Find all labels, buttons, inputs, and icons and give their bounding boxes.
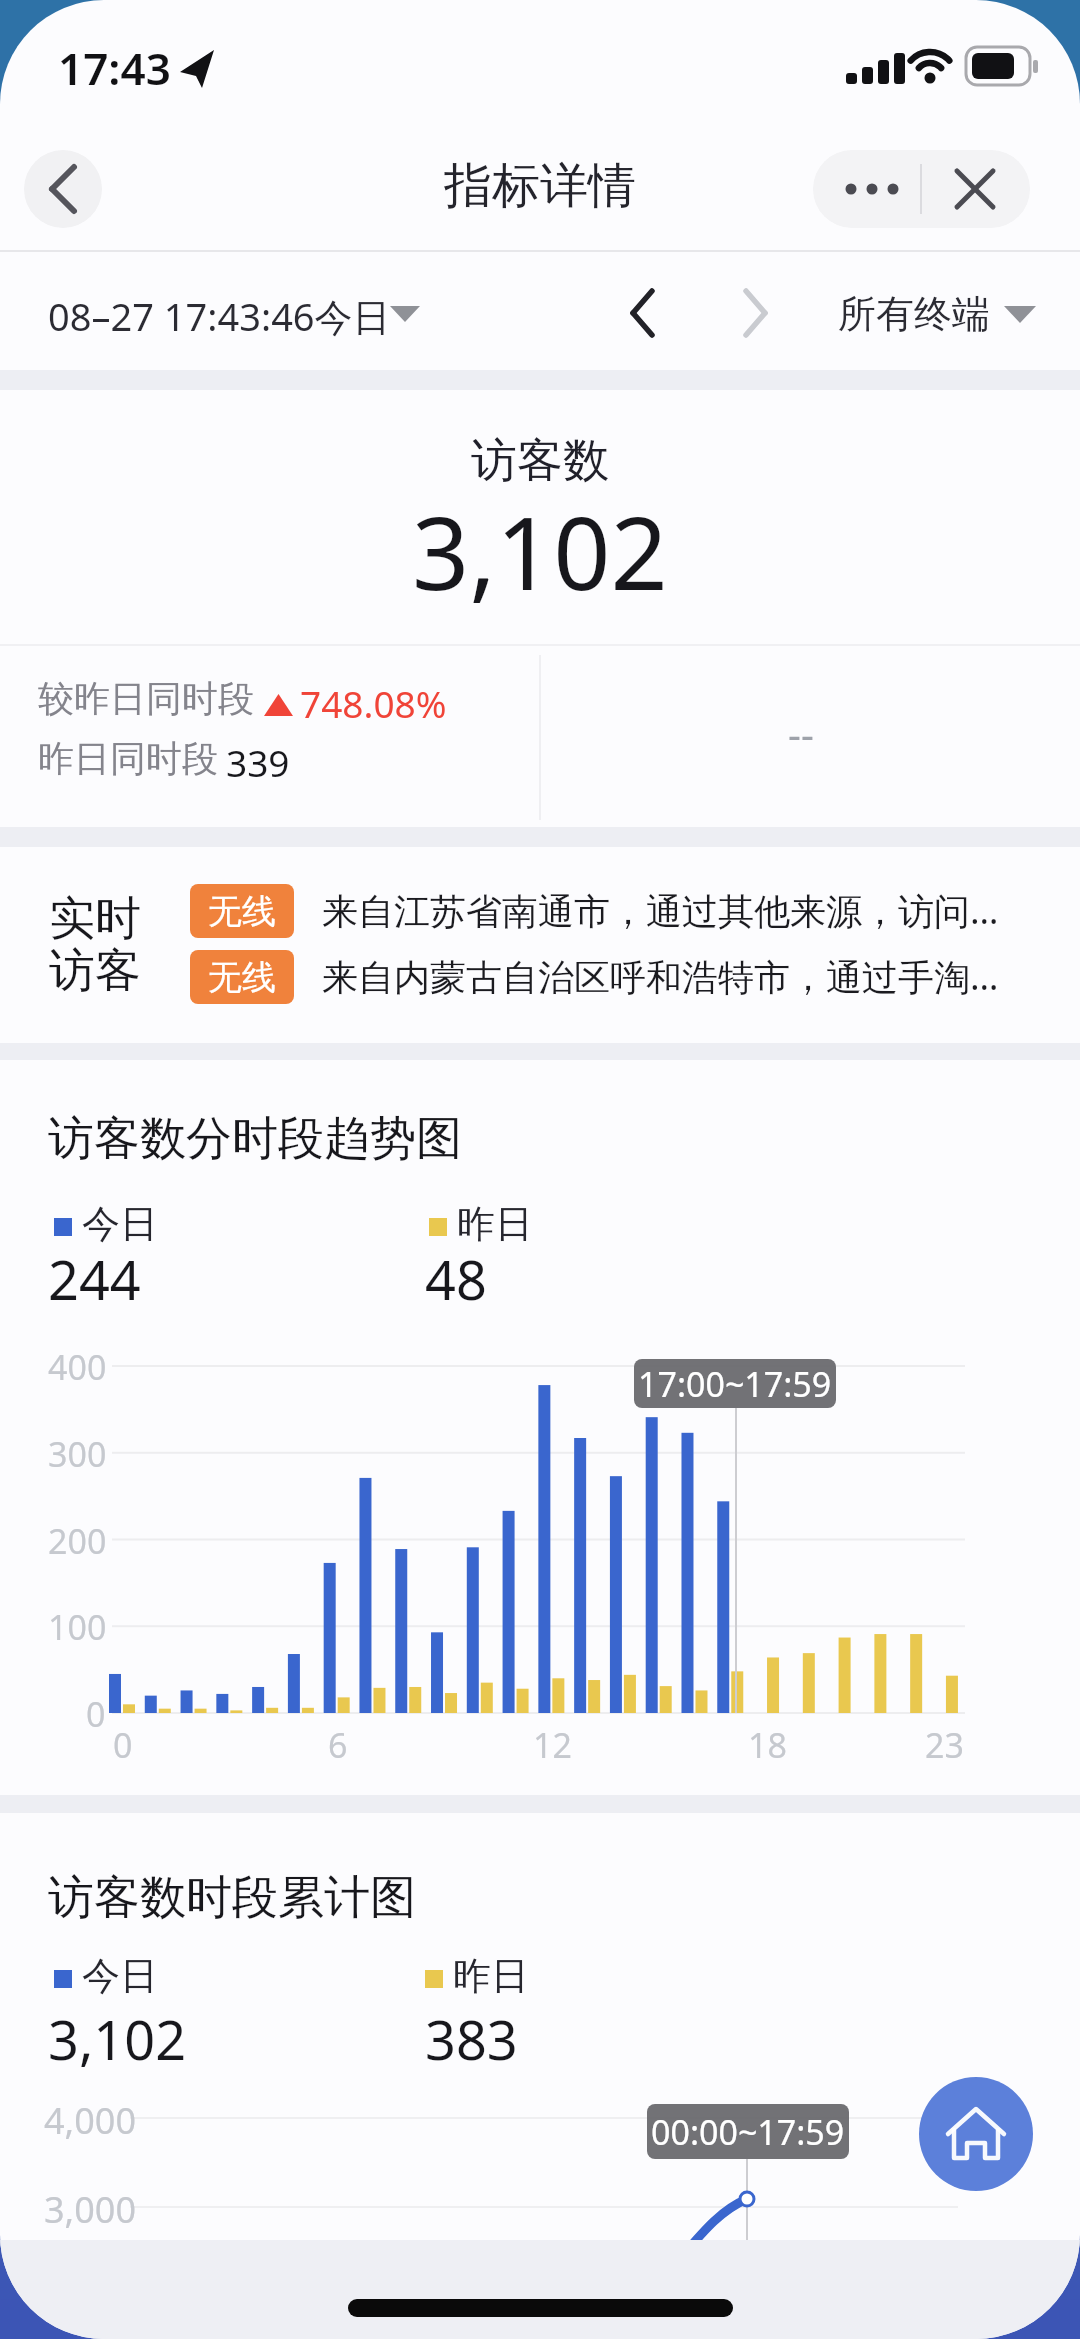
staticText: 昨日	[457, 1200, 533, 1248]
staticText: 17:00~17:59	[638, 1361, 832, 1407]
button[interactable]	[820, 268, 1040, 358]
staticText: 383	[425, 2002, 518, 2076]
button[interactable]	[813, 150, 1030, 228]
staticText: 指标详情	[444, 156, 636, 216]
staticText: 今日	[82, 1952, 158, 2000]
staticText: 200	[48, 1518, 107, 1564]
staticText: 08–27 17:43:46今日	[48, 290, 391, 342]
staticText: 18	[748, 1722, 787, 1768]
staticText: 17:43	[58, 38, 171, 98]
staticText: 来自江苏省南通市，通过其他来源，访问…	[322, 886, 999, 935]
staticText: 访客	[49, 942, 141, 1000]
staticText: 23	[925, 1722, 964, 1768]
staticText: 昨日同时段	[38, 736, 218, 781]
button[interactable]	[919, 2077, 1033, 2191]
staticText: 3,102	[412, 483, 668, 619]
staticText: 244	[48, 1242, 141, 1316]
staticText: 48	[425, 1242, 487, 1316]
button[interactable]	[40, 268, 420, 358]
staticText: 无线	[208, 956, 276, 999]
staticText: 6	[328, 1722, 348, 1768]
button[interactable]	[24, 150, 102, 228]
staticText: 较昨日同时段	[38, 676, 254, 721]
staticText: 0	[113, 1722, 133, 1768]
staticText: 100	[48, 1604, 107, 1650]
staticText: 12	[533, 1722, 572, 1768]
staticText: --	[788, 706, 814, 760]
staticText: 访客数时段累计图	[48, 1869, 416, 1927]
staticText: 访客数分时段趋势图	[48, 1110, 462, 1168]
staticText: 来自内蒙古自治区呼和浩特市，通过手淘…	[322, 952, 999, 1001]
staticText: 400	[48, 1344, 107, 1390]
button[interactable]	[600, 268, 690, 358]
staticText: 00:00~17:59	[651, 2109, 845, 2155]
staticText: 今日	[82, 1200, 158, 1248]
staticText: 3,000	[44, 2185, 137, 2234]
staticText: 所有终端	[838, 290, 990, 338]
staticText: 339	[226, 737, 290, 787]
staticText: 0	[86, 1691, 106, 1737]
staticText: 3,102	[48, 2002, 187, 2076]
staticText: 300	[48, 1431, 107, 1477]
button[interactable]	[40, 946, 1040, 1012]
staticText: 实时	[49, 890, 141, 948]
staticText: 昨日	[453, 1952, 529, 2000]
staticText: 无线	[208, 890, 276, 933]
staticText: 4,000	[44, 2096, 137, 2145]
staticText: 748.08%	[300, 678, 447, 728]
button[interactable]	[712, 268, 802, 358]
staticText: 访客数	[471, 432, 609, 490]
button[interactable]	[40, 878, 1040, 944]
